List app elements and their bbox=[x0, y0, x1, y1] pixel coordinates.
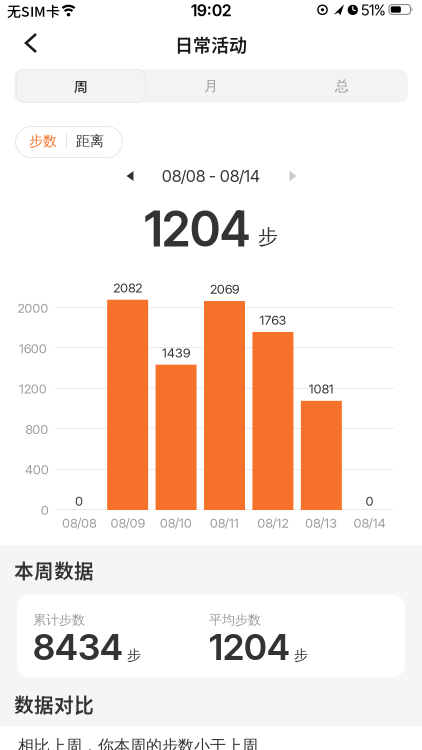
button[interactable]: 周 bbox=[16, 69, 146, 103]
button[interactable]: 总 bbox=[276, 69, 407, 102]
staticText: 800 bbox=[25, 421, 48, 437]
staticText: 19:02 bbox=[191, 1, 231, 20]
staticText: 步 bbox=[294, 647, 308, 664]
staticText: 总 bbox=[335, 77, 349, 95]
staticText: 步数 bbox=[29, 132, 57, 150]
staticText: 08/09 bbox=[111, 515, 145, 531]
staticText: 08/08 - 08/14 bbox=[162, 166, 260, 186]
staticText: 1204 bbox=[209, 625, 290, 669]
staticText: 1081 bbox=[309, 381, 334, 397]
staticText: 1204 bbox=[144, 200, 250, 258]
staticText: 0 bbox=[366, 493, 374, 509]
staticText: 1763 bbox=[259, 312, 286, 328]
staticText: 1600 bbox=[19, 340, 47, 356]
button[interactable]: 下一周 bbox=[283, 166, 303, 186]
staticText: 无SIM卡 bbox=[7, 0, 60, 21]
staticText: 08/10 bbox=[160, 515, 192, 531]
staticText: 51% bbox=[361, 1, 385, 19]
button[interactable]: 返回 bbox=[14, 30, 58, 56]
staticText: 08/08 bbox=[62, 515, 96, 531]
staticText: 0 bbox=[75, 493, 83, 509]
staticText: 2000 bbox=[17, 300, 48, 316]
staticText: 距离 bbox=[76, 132, 104, 150]
staticText: 08/14 bbox=[354, 515, 386, 531]
button[interactable]: 月 bbox=[145, 69, 276, 102]
staticText: 1439 bbox=[162, 345, 190, 360]
staticText: 日常活动 bbox=[175, 31, 247, 57]
staticText: 周 bbox=[74, 76, 88, 96]
staticText: 08/11 bbox=[210, 515, 239, 531]
button[interactable]: 上一周 bbox=[120, 166, 140, 186]
staticText: 8434 bbox=[33, 625, 123, 669]
staticText: 数据对比 bbox=[14, 690, 94, 718]
staticText: 平均步数 bbox=[209, 612, 261, 628]
staticText: 08/13 bbox=[305, 515, 337, 531]
staticText: 步 bbox=[258, 224, 278, 249]
staticText: 08/12 bbox=[257, 515, 288, 531]
button[interactable]: 步数 bbox=[20, 125, 66, 157]
staticText: 0 bbox=[41, 502, 49, 518]
staticText: 400 bbox=[25, 462, 49, 477]
button[interactable]: 距离 bbox=[67, 125, 113, 157]
staticText: 相比上周，你本周的步数小于上周 bbox=[18, 736, 258, 750]
staticText: 月 bbox=[204, 77, 218, 95]
staticText: 2069 bbox=[210, 281, 239, 297]
staticText: 1200 bbox=[19, 381, 47, 397]
staticText: 累计步数 bbox=[33, 612, 85, 628]
staticText: 本周数据 bbox=[14, 556, 94, 584]
staticText: 步 bbox=[127, 647, 141, 664]
staticText: 2082 bbox=[113, 280, 142, 296]
